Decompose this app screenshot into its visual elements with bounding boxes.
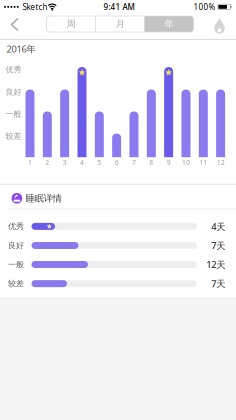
button[interactable]: Back bbox=[3, 11, 25, 37]
staticText: 4 bbox=[80, 158, 84, 167]
staticText: 10 bbox=[182, 158, 190, 167]
staticText: Sketch bbox=[22, 2, 47, 12]
staticText: 较差 bbox=[5, 131, 21, 141]
staticText: 良好 bbox=[8, 241, 24, 250]
staticText: 1 bbox=[28, 158, 32, 167]
staticText: 9 bbox=[167, 158, 171, 167]
staticText: 月 bbox=[115, 18, 124, 30]
staticText: 周 bbox=[66, 18, 75, 30]
button[interactable]: 年 bbox=[144, 16, 193, 32]
button[interactable]: 月 bbox=[95, 16, 144, 32]
staticText: 2016年 bbox=[6, 43, 35, 55]
staticText: 11 bbox=[199, 158, 207, 167]
staticText: 7天 bbox=[211, 239, 225, 252]
staticText: 年 bbox=[164, 18, 173, 30]
staticText: 一般 bbox=[5, 109, 21, 119]
staticText: 3 bbox=[63, 158, 67, 167]
staticText: 2 bbox=[45, 158, 49, 167]
staticText: 优秀 bbox=[8, 221, 24, 231]
staticText: 7 bbox=[132, 158, 136, 167]
staticText: 较差 bbox=[8, 279, 24, 288]
staticText: 一般 bbox=[8, 260, 24, 269]
staticText: 5 bbox=[97, 158, 101, 167]
staticText: 100% bbox=[193, 2, 215, 12]
staticText: 9:41 AM bbox=[103, 2, 134, 12]
staticText: 8 bbox=[149, 158, 153, 167]
staticText: 4天 bbox=[211, 220, 225, 233]
staticText: 良好 bbox=[5, 87, 21, 97]
staticText: 睡眠详情 bbox=[25, 193, 61, 204]
button[interactable]: Streak bbox=[207, 13, 231, 38]
staticText: 6 bbox=[115, 158, 119, 167]
staticText: 7天 bbox=[211, 277, 225, 290]
button[interactable]: 周 bbox=[46, 16, 95, 32]
staticText: 优秀 bbox=[5, 65, 21, 74]
staticText: 12天 bbox=[206, 258, 225, 271]
staticText: 12 bbox=[217, 158, 225, 167]
